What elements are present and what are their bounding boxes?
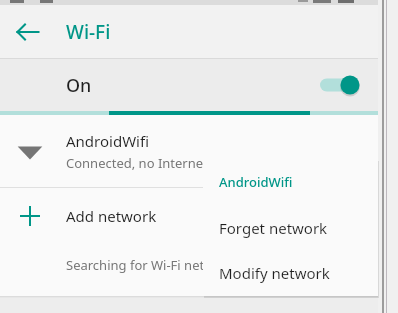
- staticText: AndroidWifi: [219, 173, 293, 191]
- staticText: Connected, no Internet: [66, 154, 208, 172]
- staticText: AndroidWifi: [66, 131, 149, 151]
- button[interactable]: AndroidWifi: [203, 159, 378, 205]
- button[interactable]: Forget network: [203, 205, 378, 250]
- staticText: Searching for Wi-Fi networks…: [66, 256, 252, 274]
- button[interactable]: AndroidWifi: [0, 115, 378, 187]
- staticText: Wi-Fi: [66, 19, 111, 45]
- button[interactable]: Modify network: [203, 250, 378, 296]
- staticText: On: [66, 73, 92, 98]
- staticText: Modify network: [219, 263, 330, 283]
- staticText: Forget network: [219, 218, 328, 238]
- button[interactable]: Back: [10, 14, 46, 50]
- button[interactable]: Add network: [0, 188, 378, 244]
- button[interactable]: Wi-Fi toggle: [318, 70, 362, 100]
- button[interactable]: On: [0, 59, 378, 111]
- staticText: Add network: [66, 206, 157, 226]
